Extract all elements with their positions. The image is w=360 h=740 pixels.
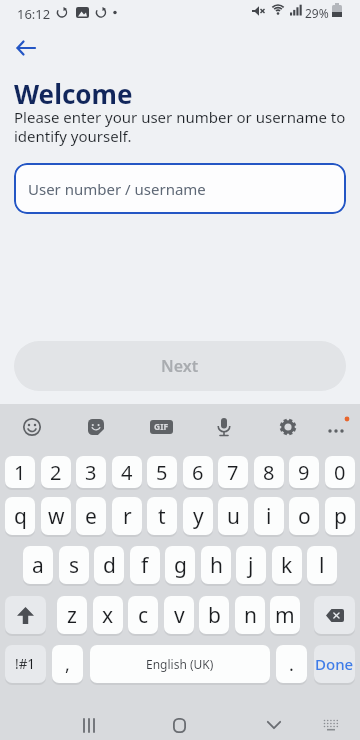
button[interactable]: , — [52, 645, 83, 683]
button[interactable]: l — [307, 546, 337, 584]
staticText: s — [69, 551, 80, 580]
staticText: 8 — [263, 459, 275, 486]
button[interactable] — [274, 409, 302, 445]
staticText: 3 — [85, 459, 97, 486]
staticText: y — [193, 502, 204, 531]
button[interactable]: 6 — [183, 456, 213, 488]
staticText: n — [244, 601, 257, 630]
staticText: 16:12 — [17, 5, 51, 23]
button[interactable]: r — [112, 497, 142, 535]
staticText: 29% — [305, 5, 329, 21]
button[interactable]: o — [289, 497, 319, 535]
button[interactable]: q — [5, 497, 35, 535]
button[interactable]: k — [272, 546, 302, 584]
staticText: Done — [315, 654, 354, 674]
button[interactable]: y — [183, 497, 213, 535]
button[interactable] — [318, 712, 344, 738]
staticText: w — [48, 502, 65, 531]
button[interactable]: b — [199, 596, 229, 634]
button[interactable]: GIF — [147, 409, 175, 445]
button[interactable]: 1 — [5, 456, 35, 488]
staticText: 5 — [156, 459, 168, 486]
staticText: English (UK) — [146, 656, 214, 672]
staticText: !#1 — [15, 655, 36, 673]
staticText: h — [210, 551, 223, 580]
staticText: a — [32, 551, 44, 580]
button[interactable]: 0 — [325, 456, 355, 488]
staticText: f — [141, 551, 149, 580]
button[interactable]: 9 — [289, 456, 319, 488]
button[interactable]: d — [94, 546, 124, 584]
staticText: 6 — [192, 459, 204, 486]
button[interactable]: English (UK) — [90, 645, 270, 683]
button[interactable] — [314, 596, 355, 634]
staticText: m — [275, 601, 295, 630]
button[interactable] — [12, 34, 40, 62]
staticText: 9 — [298, 459, 310, 486]
staticText: User number / username — [28, 179, 206, 199]
button[interactable]: Done — [314, 645, 355, 683]
staticText: c — [138, 601, 149, 630]
button[interactable] — [261, 712, 287, 738]
button[interactable]: . — [276, 645, 307, 683]
button[interactable]: 3 — [76, 456, 106, 488]
staticText: x — [102, 601, 114, 630]
button[interactable] — [166, 712, 192, 738]
button[interactable]: 2 — [41, 456, 71, 488]
button[interactable] — [82, 409, 110, 445]
button[interactable]: j — [236, 546, 266, 584]
staticText: v — [174, 601, 185, 630]
button[interactable]: x — [93, 596, 123, 634]
staticText: . — [289, 652, 294, 677]
button[interactable]: g — [165, 546, 195, 584]
button[interactable]: n — [235, 596, 265, 634]
button[interactable]: u — [218, 497, 248, 535]
button[interactable] — [76, 712, 102, 738]
staticText: b — [208, 601, 221, 630]
button[interactable]: m — [270, 596, 300, 634]
staticText: l — [319, 551, 325, 580]
button[interactable]: s — [59, 546, 89, 584]
button[interactable]: a — [23, 546, 53, 584]
staticText: e — [85, 502, 97, 531]
staticText: Please enter your user number or usernam… — [14, 107, 346, 147]
button[interactable]: Next — [14, 341, 346, 391]
button[interactable]: User number / username — [14, 163, 346, 214]
staticText: Welcome — [14, 76, 133, 111]
button[interactable]: 4 — [112, 456, 142, 488]
staticText: 0 — [334, 459, 346, 486]
staticText: Next — [161, 355, 199, 377]
button[interactable]: t — [147, 497, 177, 535]
button[interactable] — [320, 409, 352, 445]
button[interactable]: v — [164, 596, 194, 634]
button[interactable]: h — [201, 546, 231, 584]
button[interactable]: c — [128, 596, 158, 634]
button[interactable]: i — [254, 497, 284, 535]
staticText: j — [248, 551, 254, 580]
staticText: o — [298, 502, 311, 531]
button[interactable] — [18, 409, 46, 445]
staticText: 2 — [50, 459, 62, 486]
staticText: q — [14, 502, 27, 531]
staticText: p — [334, 502, 347, 531]
staticText: z — [67, 601, 77, 630]
button[interactable]: 7 — [218, 456, 248, 488]
button[interactable]: !#1 — [5, 645, 46, 683]
button[interactable]: f — [130, 546, 160, 584]
button[interactable]: p — [325, 497, 355, 535]
staticText: , — [65, 652, 70, 677]
button[interactable]: w — [41, 497, 71, 535]
staticText: 4 — [121, 459, 133, 486]
staticText: i — [266, 502, 272, 531]
button[interactable] — [5, 596, 46, 634]
button[interactable]: 8 — [254, 456, 284, 488]
staticText: GIF — [154, 421, 169, 433]
staticText: u — [227, 502, 240, 531]
staticText: g — [174, 551, 187, 580]
button[interactable]: 5 — [147, 456, 177, 488]
staticText: d — [103, 551, 116, 580]
button[interactable]: z — [57, 596, 87, 634]
staticText: r — [123, 502, 132, 531]
button[interactable] — [210, 409, 238, 445]
button[interactable]: e — [76, 497, 106, 535]
